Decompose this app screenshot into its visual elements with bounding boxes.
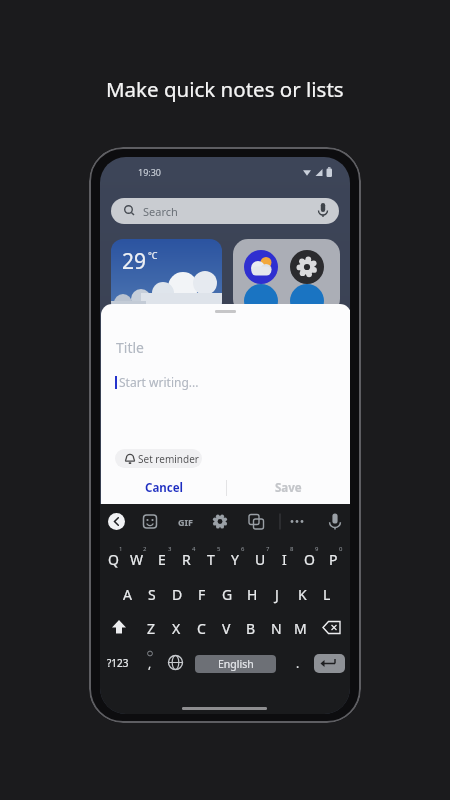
button[interactable]: M: [284, 616, 316, 640]
staticText: .: [296, 655, 300, 671]
button[interactable]: [314, 654, 345, 673]
staticText: M: [294, 619, 307, 638]
staticText: Title: [116, 338, 144, 357]
staticText: 19:30: [138, 166, 162, 178]
staticText: N: [271, 619, 282, 638]
staticText: 0: [339, 545, 343, 553]
button[interactable]: N: [260, 616, 292, 640]
staticText: 6: [241, 545, 245, 553]
button[interactable]: S: [136, 582, 168, 606]
button[interactable]: O: [293, 547, 325, 571]
staticText: °C: [148, 249, 158, 261]
staticText: J: [275, 585, 279, 604]
button[interactable]: [106, 616, 132, 639]
button[interactable]: Z: [135, 616, 167, 640]
staticText: 29: [122, 247, 147, 276]
staticText: 9: [315, 545, 319, 553]
button[interactable]: W: [121, 547, 153, 571]
button[interactable]: F: [186, 582, 218, 606]
staticText: 4: [192, 545, 196, 553]
staticText: Q: [108, 550, 119, 569]
staticText: ,: [148, 655, 152, 671]
button[interactable]: I: [268, 547, 300, 571]
button[interactable]: G: [211, 582, 243, 606]
staticText: 8: [290, 545, 294, 553]
button[interactable]: Start writing...: [119, 372, 209, 392]
staticText: X: [172, 619, 181, 638]
staticText: Make quick notes or lists: [106, 75, 344, 103]
button[interactable]: ?123: [105, 652, 130, 673]
staticText: Cancel: [145, 480, 183, 496]
button[interactable]: [108, 513, 125, 530]
button[interactable]: .: [291, 652, 305, 673]
staticText: 7: [266, 545, 270, 553]
button[interactable]: T: [195, 547, 227, 571]
staticText: O: [304, 550, 315, 569]
button[interactable]: Set reminder: [115, 449, 202, 468]
staticText: ?123: [107, 656, 129, 670]
button[interactable]: C: [185, 616, 217, 640]
button[interactable]: [319, 616, 345, 639]
staticText: Z: [147, 619, 156, 638]
button[interactable]: Cancel: [101, 476, 226, 500]
button[interactable]: X: [160, 616, 192, 640]
staticText: V: [222, 619, 231, 638]
staticText: L: [323, 585, 331, 604]
staticText: T: [207, 550, 215, 569]
button[interactable]: P: [317, 547, 349, 571]
button[interactable]: V: [210, 616, 242, 640]
staticText: 1: [119, 545, 123, 553]
button[interactable]: English: [195, 655, 276, 673]
button[interactable]: [166, 653, 185, 672]
staticText: Search: [143, 204, 178, 219]
button[interactable]: J: [261, 582, 293, 606]
staticText: R: [182, 550, 191, 569]
button[interactable]: 29: [111, 239, 222, 314]
staticText: S: [148, 585, 156, 604]
button[interactable]: [244, 250, 278, 284]
staticText: H: [247, 585, 258, 604]
staticText: Y: [231, 550, 239, 569]
staticText: K: [298, 585, 307, 604]
button[interactable]: ,: [143, 652, 157, 673]
button[interactable]: [290, 250, 324, 284]
staticText: GIF: [178, 516, 193, 528]
staticText: 3: [168, 545, 172, 553]
button[interactable]: Search: [111, 198, 339, 224]
button[interactable]: K: [286, 582, 318, 606]
staticText: W: [130, 550, 144, 569]
button[interactable]: R: [170, 547, 202, 571]
staticText: U: [255, 550, 266, 569]
button[interactable]: Q: [100, 547, 129, 571]
button[interactable]: U: [244, 547, 276, 571]
staticText: C: [197, 619, 206, 638]
staticText: Save: [275, 480, 302, 496]
staticText: F: [198, 585, 206, 604]
staticText: G: [222, 585, 233, 604]
staticText: 5: [217, 545, 221, 553]
button[interactable]: H: [236, 582, 268, 606]
staticText: A: [123, 585, 132, 604]
button[interactable]: E: [146, 547, 178, 571]
button[interactable]: L: [311, 582, 343, 606]
button[interactable]: Title: [116, 337, 176, 357]
button[interactable]: Y: [219, 547, 251, 571]
button[interactable]: D: [161, 582, 193, 606]
button[interactable]: A: [111, 582, 143, 606]
staticText: I: [282, 550, 287, 569]
staticText: Start writing...: [119, 374, 199, 390]
staticText: E: [158, 550, 166, 569]
staticText: 2: [143, 545, 147, 553]
staticText: B: [246, 619, 256, 638]
button[interactable]: Save: [226, 476, 350, 500]
staticText: P: [329, 550, 338, 569]
button[interactable]: B: [235, 616, 267, 640]
staticText: English: [218, 657, 254, 671]
button[interactable]: GIF: [174, 511, 196, 532]
staticText: D: [172, 585, 183, 604]
staticText: Set reminder: [138, 452, 199, 466]
